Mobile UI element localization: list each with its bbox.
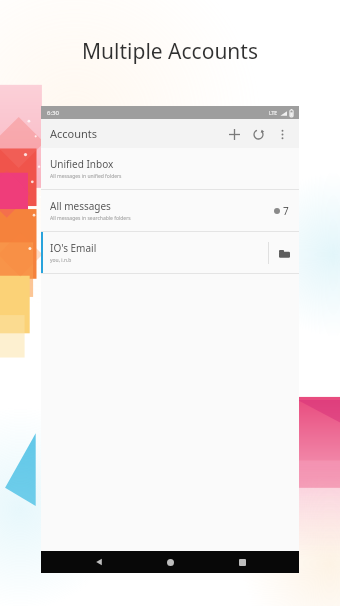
staticText: IO's Email bbox=[50, 241, 97, 255]
button[interactable]: Home bbox=[156, 551, 184, 573]
staticText: you, i.n.b bbox=[50, 257, 72, 264]
staticText: All messages bbox=[50, 199, 111, 213]
staticText: All messages in unified folders bbox=[50, 173, 122, 180]
staticText: 6:30 bbox=[47, 109, 59, 117]
button[interactable]: Unified Inbox bbox=[41, 148, 299, 189]
staticText: Accounts bbox=[50, 126, 98, 141]
button[interactable]: Folders bbox=[269, 238, 299, 268]
staticText: 7 bbox=[283, 204, 289, 218]
button[interactable]: IO's Email bbox=[41, 232, 299, 273]
staticText: Unified Inbox bbox=[50, 157, 114, 171]
button[interactable]: Recents bbox=[228, 551, 256, 573]
button[interactable]: Refresh bbox=[246, 122, 270, 146]
staticText: Multiple Accounts bbox=[0, 37, 340, 66]
button[interactable]: More options bbox=[270, 122, 294, 146]
button[interactable]: Back bbox=[85, 551, 113, 573]
staticText: LTE bbox=[269, 110, 278, 117]
staticText: All messages in searchable folders bbox=[50, 215, 131, 222]
button[interactable]: All messages bbox=[41, 190, 299, 231]
button[interactable]: Add account bbox=[222, 122, 246, 146]
